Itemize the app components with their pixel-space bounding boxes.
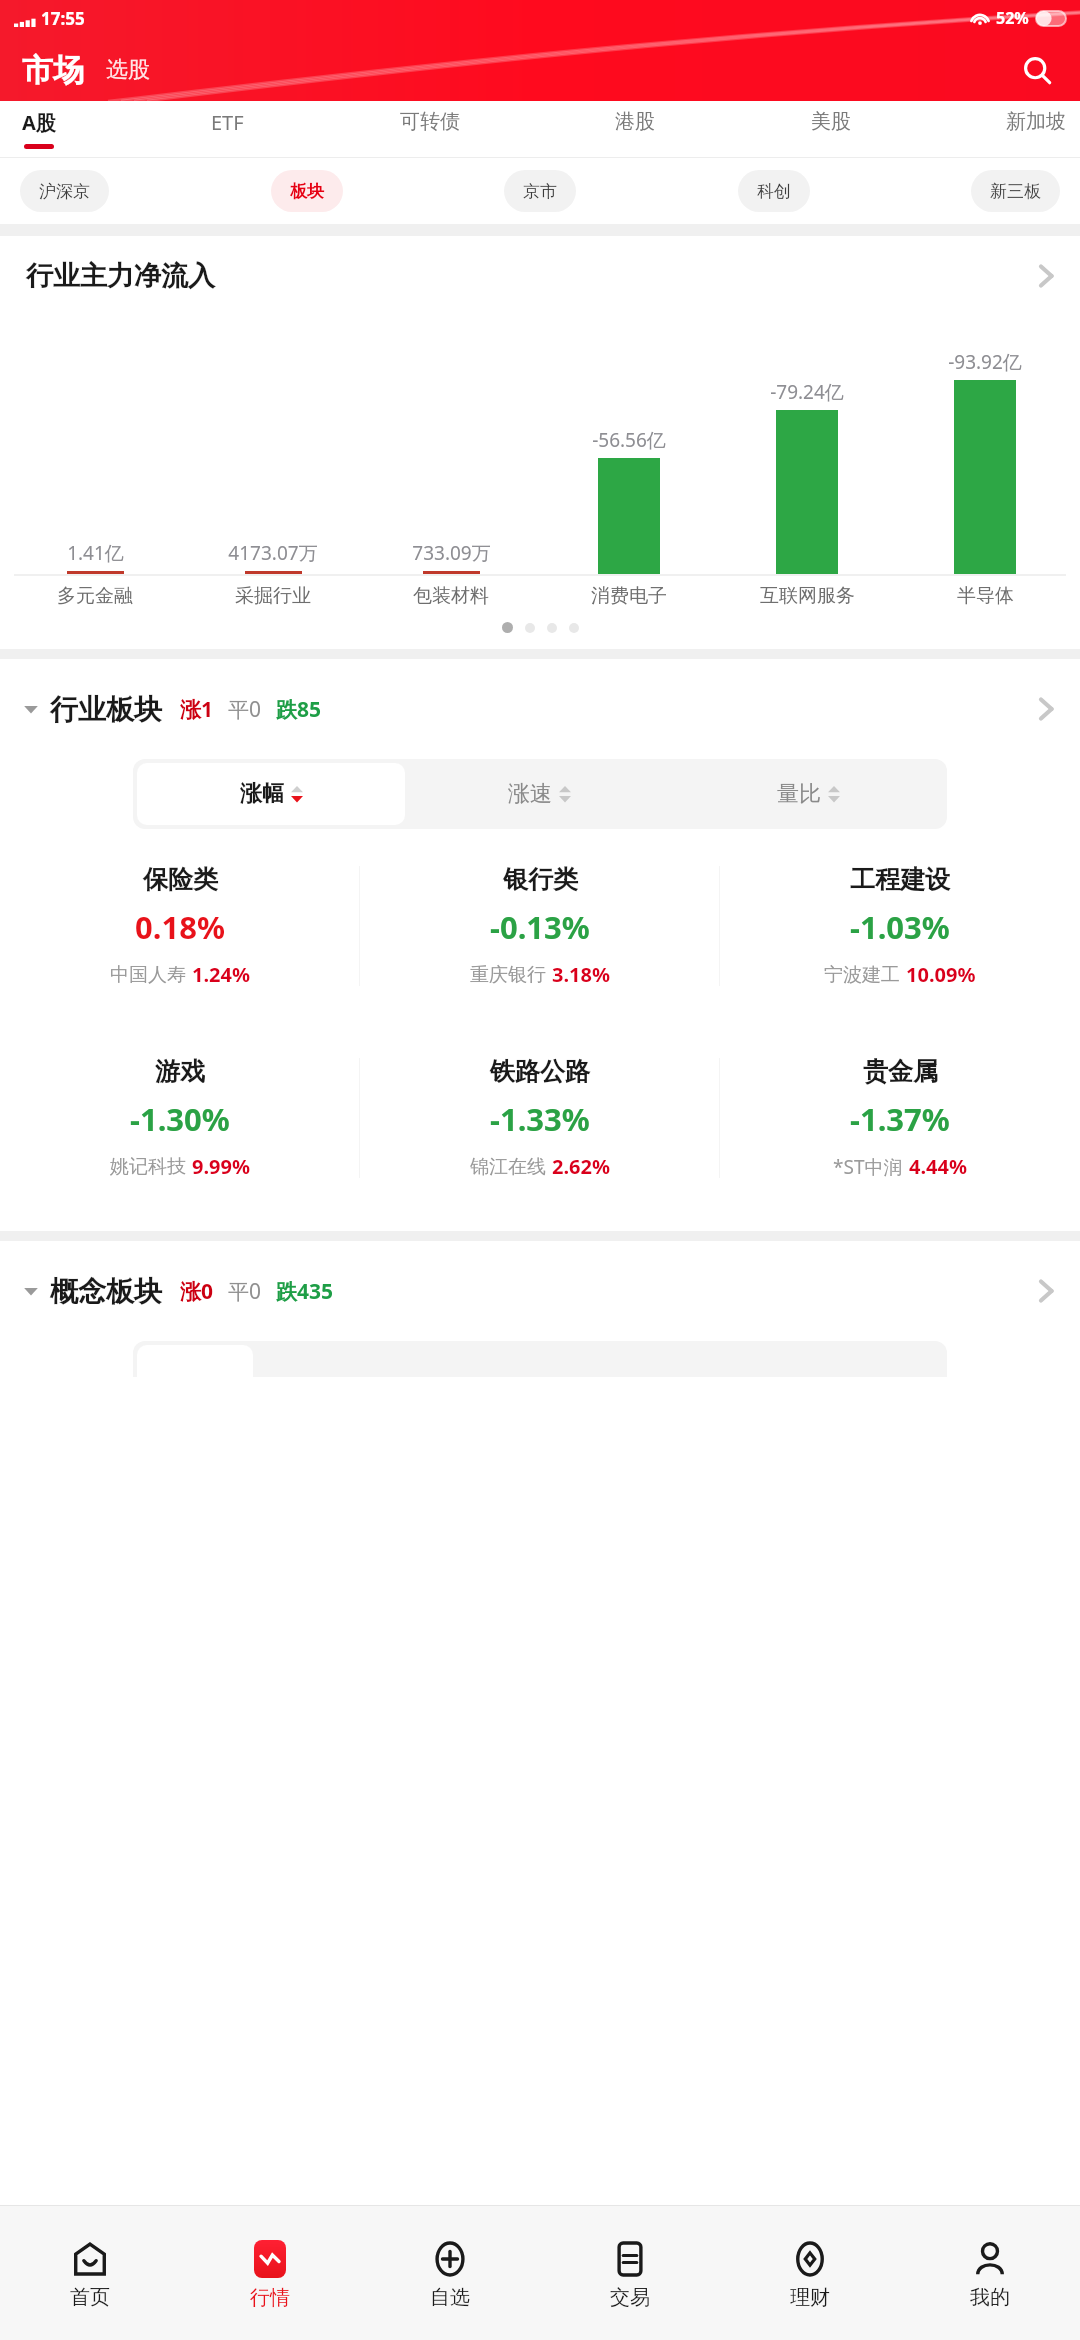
staticText: 多元金融 [57, 584, 133, 608]
button[interactable]: 工程建设 [720, 839, 1080, 1013]
staticText: 10.09% [906, 961, 976, 988]
button[interactable]: 自选 [360, 2206, 540, 2340]
staticText: 我的 [970, 2285, 1010, 2310]
staticText: 采掘行业 [235, 584, 311, 608]
staticText: 自选 [430, 2285, 470, 2310]
button[interactable]: 交易 [540, 2206, 720, 2340]
staticText: 9.99% [192, 1153, 250, 1180]
staticText: 量比 [777, 780, 821, 808]
staticText: 板块 [290, 181, 324, 202]
staticText: 平0 [228, 1277, 262, 1306]
button[interactable]: 概念板块 [0, 1241, 1080, 1341]
staticText: 保险类 [143, 864, 218, 895]
button[interactable]: Search [1014, 47, 1060, 93]
button[interactable]: 港股 [613, 101, 657, 142]
button[interactable]: A股 [20, 101, 58, 149]
staticText: 京市 [523, 181, 557, 202]
staticText: 新加坡 [1006, 109, 1066, 134]
staticText: 733.09万 [412, 540, 491, 566]
staticText: 贵金属 [863, 1056, 938, 1087]
button[interactable]: 涨速 [405, 763, 674, 825]
button[interactable]: 贵金属 [720, 1031, 1080, 1205]
staticText: 银行类 [503, 864, 578, 895]
staticText: 锦江在线 [470, 1155, 546, 1179]
staticText: 选股 [106, 56, 150, 84]
staticText: 中国人寿 [110, 963, 186, 987]
button[interactable]: 行业主力净流入 [0, 236, 1080, 316]
button[interactable]: 银行类 [360, 839, 720, 1013]
staticText: 4173.07万 [228, 540, 318, 566]
staticText: 涨0 [180, 1277, 214, 1306]
button[interactable]: 选股 [106, 56, 150, 84]
staticText: -0.13% [490, 906, 590, 948]
staticText: 包装材料 [413, 584, 489, 608]
staticText: 涨1 [180, 695, 214, 724]
staticText: -1.33% [490, 1098, 590, 1140]
staticText: 美股 [811, 109, 851, 134]
staticText: 涨幅 [240, 780, 284, 808]
button[interactable]: 新加坡 [1004, 101, 1068, 142]
staticText: 平0 [228, 695, 262, 724]
button[interactable]: 我的 [900, 2206, 1080, 2340]
staticText: 游戏 [155, 1056, 205, 1087]
staticText: -1.03% [850, 906, 950, 948]
staticText: 行业板块 [50, 692, 162, 727]
staticText: *ST中润 [833, 1154, 903, 1180]
staticText: 姚记科技 [110, 1155, 186, 1179]
button[interactable]: 科创 [738, 170, 810, 212]
button[interactable]: 涨幅 [137, 763, 405, 825]
staticText: 半导体 [957, 584, 1014, 608]
staticText: 互联网服务 [760, 584, 855, 608]
staticText: 4.44% [909, 1153, 967, 1180]
button[interactable]: 市场 [22, 51, 84, 90]
staticText: -1.37% [850, 1098, 950, 1140]
button[interactable]: 游戏 [0, 1031, 360, 1205]
staticText: 3.18% [552, 961, 610, 988]
staticText: 市场 [22, 51, 84, 90]
staticText: -79.24亿 [770, 379, 844, 405]
staticText: 0.18% [135, 906, 225, 948]
staticText: 涨速 [508, 780, 552, 808]
staticText: 行业主力净流入 [26, 259, 215, 293]
staticText: 首页 [70, 2285, 110, 2310]
staticText: 1.41亿 [67, 540, 124, 566]
staticText: -1.30% [130, 1098, 230, 1140]
staticText: A股 [22, 109, 56, 136]
button[interactable]: 板块 [271, 170, 343, 212]
staticText: 理财 [790, 2285, 830, 2310]
button[interactable]: 行情 [180, 2206, 360, 2340]
staticText: 行情 [250, 2285, 290, 2310]
staticText: 铁路公路 [490, 1056, 590, 1087]
button[interactable]: 京市 [504, 170, 576, 212]
staticText: 工程建设 [850, 864, 950, 895]
button[interactable]: 新三板 [971, 170, 1060, 212]
button[interactable]: 可转债 [398, 101, 462, 142]
button[interactable]: ETF [209, 101, 246, 144]
staticText: -56.56亿 [592, 427, 666, 453]
staticText: 17:55 [41, 7, 85, 30]
button[interactable]: 量比 [674, 763, 943, 825]
staticText: 消费电子 [591, 584, 667, 608]
staticText: 跌435 [276, 1277, 334, 1306]
staticText: 科创 [757, 181, 791, 202]
staticText: 交易 [610, 2285, 650, 2310]
staticText: 宁波建工 [824, 963, 900, 987]
staticText: 新三板 [990, 181, 1041, 202]
staticText: 1.24% [192, 961, 250, 988]
button[interactable]: 理财 [720, 2206, 900, 2340]
staticText: 概念板块 [50, 1274, 162, 1309]
button[interactable]: 首页 [0, 2206, 180, 2340]
button[interactable]: 沪深京 [20, 170, 109, 212]
staticText: ETF [211, 109, 244, 136]
button[interactable]: 行业板块 [0, 659, 1080, 759]
staticText: 52% [996, 7, 1029, 29]
staticText: 跌85 [276, 695, 322, 724]
staticText: 可转债 [400, 109, 460, 134]
staticText: 重庆银行 [470, 963, 546, 987]
button[interactable]: 美股 [809, 101, 853, 142]
staticText: -93.92亿 [948, 349, 1022, 375]
button[interactable]: 保险类 [0, 839, 360, 1013]
staticText: 沪深京 [39, 181, 90, 202]
staticText: 港股 [615, 109, 655, 134]
button[interactable]: 铁路公路 [360, 1031, 720, 1205]
